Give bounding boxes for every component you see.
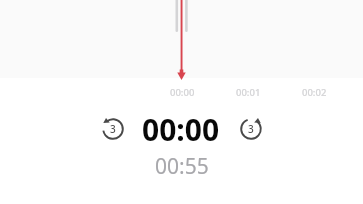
button[interactable]: 00:00 [142,109,220,150]
button[interactable]: Forward 3 seconds [232,110,270,148]
staticText: 3 [110,122,116,136]
button[interactable]: 00:55 [155,152,209,181]
button[interactable]: Rewind 3 seconds [94,110,132,148]
staticText: 00:01 [236,86,261,99]
staticText: 00:00 [170,86,195,99]
staticText: 00:02 [302,86,327,99]
staticText: 3 [248,122,254,136]
